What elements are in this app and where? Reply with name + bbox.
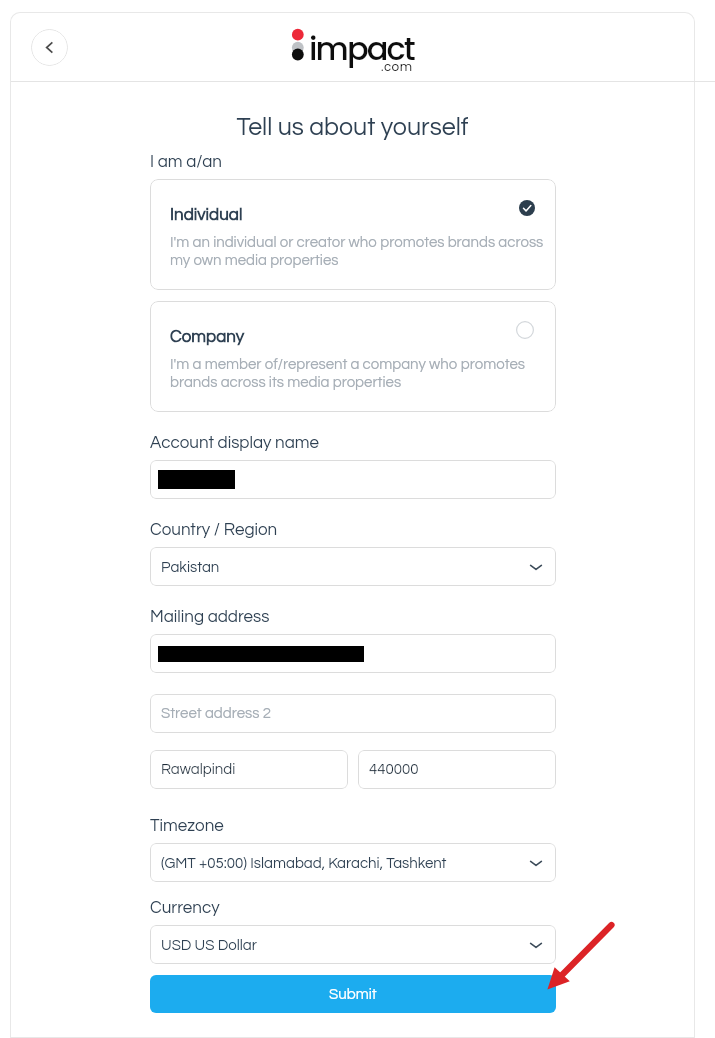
- button[interactable]: [150, 460, 556, 499]
- staticText: 440000: [369, 762, 419, 777]
- button[interactable]: Street address 2: [150, 694, 556, 733]
- button[interactable]: 440000: [358, 750, 556, 789]
- staticText: (GMT +05:00) Islamabad, Karachi, Tashken…: [161, 856, 447, 871]
- button[interactable]: Back: [31, 29, 68, 66]
- staticText: Pakistan: [161, 560, 220, 575]
- staticText: Currency: [150, 899, 220, 917]
- staticText: I am a/an: [150, 153, 222, 171]
- staticText: Country / Region: [150, 521, 278, 539]
- staticText: Submit: [329, 987, 377, 1002]
- staticText: Rawalpindi: [161, 762, 236, 777]
- staticText: I'm a member of/represent a company who …: [170, 357, 547, 390]
- staticText: Mailing address: [150, 608, 270, 626]
- staticText: Account display name: [150, 434, 320, 452]
- staticText: .com: [381, 58, 413, 75]
- staticText: Timezone: [150, 817, 224, 835]
- button[interactable]: USD US Dollar: [150, 925, 556, 964]
- button[interactable]: Individual: [150, 179, 556, 290]
- staticText: impact: [309, 26, 414, 71]
- button[interactable]: Pakistan: [150, 547, 556, 586]
- staticText: Individual: [170, 206, 243, 224]
- button[interactable]: Rawalpindi: [150, 750, 348, 789]
- staticText: USD US Dollar: [161, 938, 257, 953]
- staticText: Street address 2: [161, 706, 271, 721]
- staticText: Tell us about yourself: [236, 114, 469, 140]
- staticText: Company: [170, 328, 245, 346]
- button[interactable]: (GMT +05:00) Islamabad, Karachi, Tashken…: [150, 843, 556, 882]
- button[interactable]: Company: [150, 301, 556, 412]
- button[interactable]: Submit: [150, 975, 556, 1013]
- button[interactable]: [150, 634, 556, 673]
- staticText: I'm an individual or creator who promote…: [170, 235, 547, 268]
